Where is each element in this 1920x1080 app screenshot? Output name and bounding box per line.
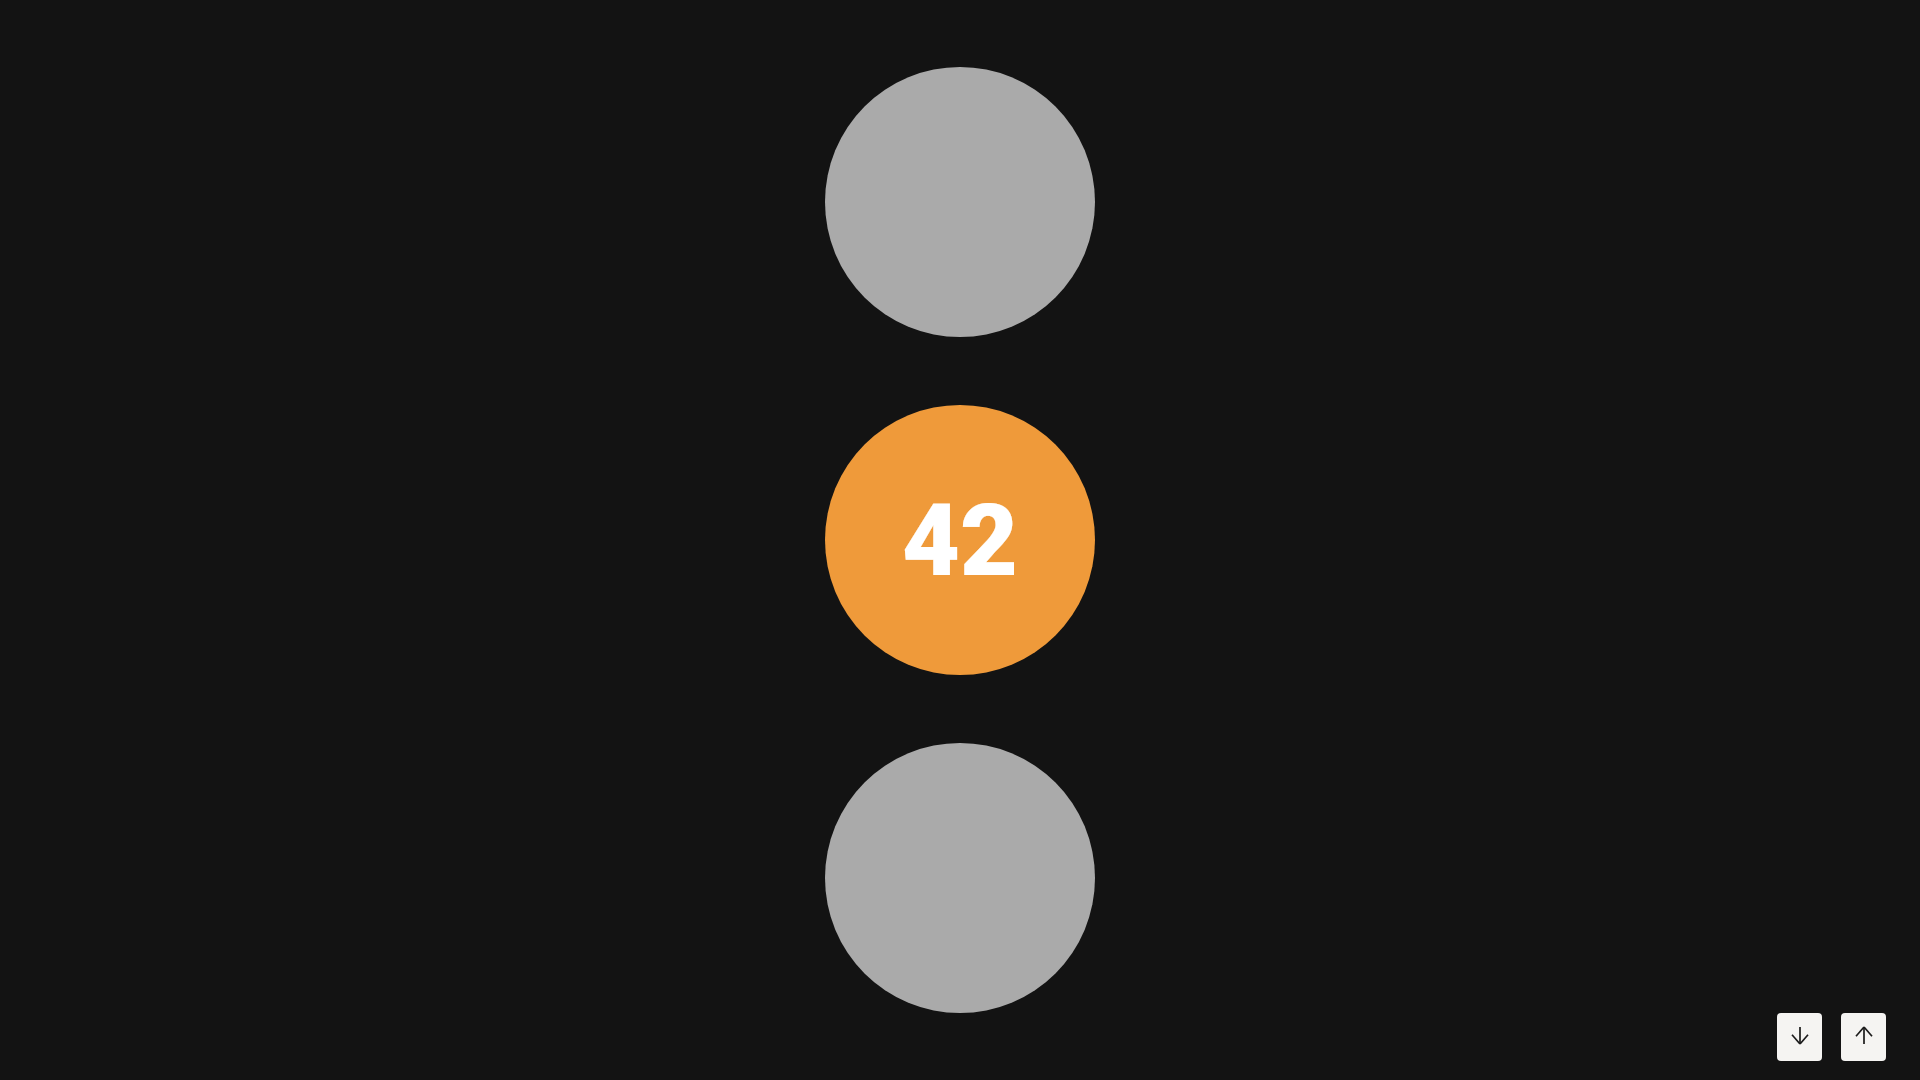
button[interactable]: Scroll down (1777, 1013, 1822, 1061)
button[interactable] (825, 743, 1095, 1013)
staticText: 42 (902, 482, 1018, 599)
button[interactable] (825, 67, 1095, 337)
button[interactable]: Scroll up (1841, 1013, 1886, 1061)
button[interactable]: 42 (825, 405, 1095, 675)
